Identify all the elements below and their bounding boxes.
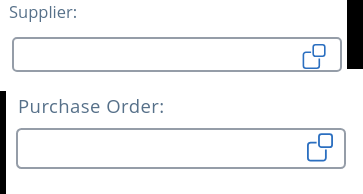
staticText: Purchase Order: [18, 93, 165, 118]
staticText: Supplier: [9, 0, 78, 22]
button[interactable] [300, 42, 328, 70]
button[interactable] [304, 131, 334, 163]
button[interactable] [16, 128, 346, 169]
button[interactable] [12, 37, 342, 72]
